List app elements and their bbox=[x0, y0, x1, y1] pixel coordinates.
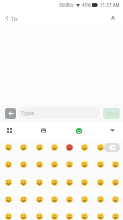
button[interactable]: Emoji bbox=[47, 156, 62, 173]
button[interactable]: Emoji bbox=[62, 174, 77, 191]
button[interactable]: Send bbox=[103, 108, 120, 119]
button[interactable]: Emoji bbox=[62, 156, 77, 173]
button[interactable]: Emoji bbox=[108, 191, 123, 208]
button[interactable]: Emoji bbox=[108, 208, 123, 220]
staticText: To bbox=[11, 15, 18, 23]
button[interactable]: Emoji bbox=[73, 122, 85, 139]
button[interactable]: Back bbox=[1, 9, 13, 25]
button[interactable]: Choose contact bbox=[106, 9, 120, 25]
button[interactable]: Emoji bbox=[93, 174, 108, 191]
button[interactable]: Emoji bbox=[1, 156, 16, 173]
staticText: Send bbox=[106, 110, 118, 117]
button[interactable]: Emoji bbox=[32, 156, 47, 173]
button[interactable]: Emoji bbox=[77, 191, 92, 208]
button[interactable]: Emoji bbox=[47, 191, 62, 208]
staticText: Type bbox=[21, 109, 35, 117]
button[interactable]: Emoji bbox=[16, 174, 31, 191]
button[interactable]: Emoji bbox=[77, 156, 92, 173]
button[interactable]: Emoji bbox=[47, 174, 62, 191]
button[interactable]: Emoji bbox=[77, 174, 92, 191]
button[interactable]: Emoji bbox=[1, 191, 16, 208]
button[interactable]: Emoji bbox=[47, 139, 62, 156]
button[interactable]: Emoji bbox=[62, 139, 77, 156]
button[interactable]: Emoji bbox=[108, 174, 123, 191]
button[interactable]: Emoji bbox=[62, 208, 77, 220]
button[interactable]: Emoji bbox=[1, 208, 16, 220]
staticText: 360B/s bbox=[59, 2, 74, 8]
button[interactable]: Stickers bbox=[37, 122, 49, 139]
button[interactable]: Emoji bbox=[93, 191, 108, 208]
button[interactable]: Emoji bbox=[32, 191, 47, 208]
button[interactable]: Emoji bbox=[16, 156, 31, 173]
button[interactable]: Emoji bbox=[32, 208, 47, 220]
staticText: 11:37 AM bbox=[100, 2, 120, 8]
button[interactable]: Emoji bbox=[93, 156, 108, 173]
button[interactable]: Apps bbox=[3, 122, 15, 139]
button[interactable]: Emoji bbox=[1, 139, 16, 156]
staticText: 45% bbox=[82, 2, 91, 8]
button[interactable]: Emoji bbox=[16, 208, 31, 220]
button[interactable]: Emoji bbox=[32, 174, 47, 191]
button[interactable]: Emoji bbox=[93, 208, 108, 220]
button[interactable]: Emoji bbox=[77, 139, 92, 156]
button[interactable]: Emoji bbox=[16, 191, 31, 208]
button[interactable]: Emoji bbox=[16, 139, 31, 156]
button[interactable]: Emoji bbox=[108, 156, 123, 173]
button[interactable]: Type bbox=[18, 107, 100, 119]
button[interactable]: Emoji bbox=[93, 139, 108, 156]
button[interactable]: Emoji bbox=[77, 208, 92, 220]
button[interactable]: Show more options bbox=[5, 108, 16, 119]
button[interactable]: Emoji bbox=[1, 174, 16, 191]
button[interactable]: Emoji bbox=[32, 139, 47, 156]
button[interactable]: Emoji bbox=[62, 191, 77, 208]
button[interactable]: Emoji bbox=[47, 208, 62, 220]
button[interactable]: Backspace bbox=[108, 139, 123, 156]
button[interactable]: Hide keyboard bbox=[106, 122, 118, 139]
